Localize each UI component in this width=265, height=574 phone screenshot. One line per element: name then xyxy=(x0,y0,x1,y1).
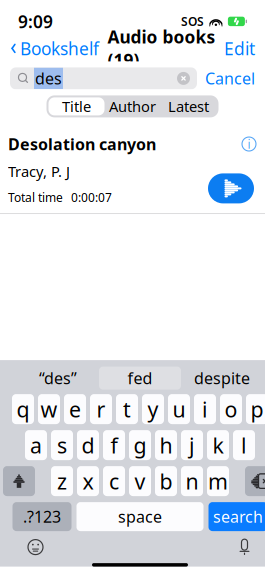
staticText: g xyxy=(133,431,146,459)
button[interactable]: Edit xyxy=(224,37,255,60)
button[interactable]: Book information xyxy=(241,136,257,152)
staticText: Desolation canyon xyxy=(8,133,156,155)
button[interactable]: Cancel xyxy=(205,68,255,89)
button[interactable]: Latest xyxy=(160,97,216,115)
button[interactable]: Emoji keyboard xyxy=(22,534,48,560)
button[interactable]: Dictation xyxy=(231,534,257,560)
button[interactable]: e xyxy=(64,394,86,424)
button[interactable]: space xyxy=(76,502,203,531)
staticText: .?123 xyxy=(23,506,61,527)
button[interactable]: k xyxy=(207,430,229,460)
staticText: j xyxy=(189,431,195,459)
staticText: v xyxy=(134,467,145,495)
staticText: w xyxy=(40,395,57,423)
staticText: fed xyxy=(127,367,152,389)
button[interactable]: l xyxy=(233,430,255,460)
staticText: Audio books (19) xyxy=(107,25,215,71)
button[interactable]: Delete xyxy=(245,466,265,496)
button[interactable]: fed xyxy=(99,367,181,390)
staticText: b xyxy=(159,467,172,495)
staticText: t xyxy=(123,395,131,423)
staticText: 0:00:07 xyxy=(71,189,112,205)
button[interactable]: t xyxy=(116,394,138,424)
staticText: k xyxy=(212,431,223,459)
staticText: p xyxy=(250,395,263,423)
button[interactable]: Shift xyxy=(3,466,35,496)
staticText: r xyxy=(96,395,105,423)
button[interactable]: a xyxy=(25,430,47,460)
button[interactable]: f xyxy=(103,430,125,460)
button[interactable]: g xyxy=(129,430,151,460)
staticText: u xyxy=(172,395,185,423)
staticText: z xyxy=(57,467,67,495)
button[interactable]: c xyxy=(103,466,125,496)
staticText: Bookshelf xyxy=(20,37,99,60)
button[interactable]: Clear search text xyxy=(177,72,190,85)
staticText: d xyxy=(81,431,94,459)
button[interactable]: .?123 xyxy=(12,502,71,531)
button[interactable]: h xyxy=(155,430,177,460)
staticText: e xyxy=(69,395,81,423)
staticText: Tracy, P. J xyxy=(8,162,70,181)
staticText: q xyxy=(16,395,29,423)
staticText: Total time xyxy=(8,189,63,205)
staticText: x xyxy=(82,467,93,495)
button[interactable]: despite xyxy=(181,367,263,390)
button[interactable]: m xyxy=(207,466,229,496)
staticText: n xyxy=(185,467,198,495)
staticText: despite xyxy=(194,367,250,389)
staticText: f xyxy=(110,431,117,459)
staticText: space xyxy=(118,506,162,527)
button[interactable]: y xyxy=(142,394,164,424)
button[interactable]: Play audio book xyxy=(208,173,254,203)
button[interactable]: j xyxy=(181,430,203,460)
staticText: y xyxy=(147,395,158,423)
staticText: SOS xyxy=(181,13,204,29)
button[interactable]: b xyxy=(155,466,177,496)
button[interactable]: w xyxy=(38,394,60,424)
button[interactable]: Title xyxy=(48,97,104,115)
staticText: 9:09 xyxy=(18,10,53,33)
button[interactable]: d xyxy=(77,430,99,460)
button[interactable]: o xyxy=(220,394,242,424)
staticText: “des” xyxy=(39,367,77,389)
button[interactable]: i xyxy=(194,394,216,424)
button[interactable]: “des” xyxy=(17,367,99,390)
button[interactable]: n xyxy=(181,466,203,496)
staticText: a xyxy=(30,431,42,459)
staticText: i xyxy=(247,136,250,152)
button[interactable]: q xyxy=(12,394,34,424)
staticText: o xyxy=(224,395,237,423)
staticText: Title xyxy=(62,97,91,116)
button[interactable]: x xyxy=(77,466,99,496)
button[interactable]: p xyxy=(246,394,265,424)
staticText: s xyxy=(57,431,67,459)
button[interactable]: u xyxy=(168,394,190,424)
button[interactable]: v xyxy=(129,466,151,496)
button[interactable]: Author xyxy=(104,97,160,115)
staticText: Cancel xyxy=(205,68,255,89)
staticText: Edit xyxy=(224,37,255,60)
button[interactable]: search xyxy=(208,502,265,531)
staticText: h xyxy=(159,431,172,459)
button[interactable]: s xyxy=(51,430,73,460)
staticText: c xyxy=(109,467,119,495)
button[interactable]: Bookshelf xyxy=(10,37,99,60)
staticText: i xyxy=(202,395,208,423)
staticText: m xyxy=(208,467,228,495)
staticText: search xyxy=(213,506,263,527)
staticText: des xyxy=(35,68,62,89)
button[interactable]: r xyxy=(90,394,112,424)
staticText: l xyxy=(241,431,247,459)
staticText: Author xyxy=(109,97,156,116)
staticText: Latest xyxy=(168,97,209,116)
button[interactable]: z xyxy=(51,466,73,496)
